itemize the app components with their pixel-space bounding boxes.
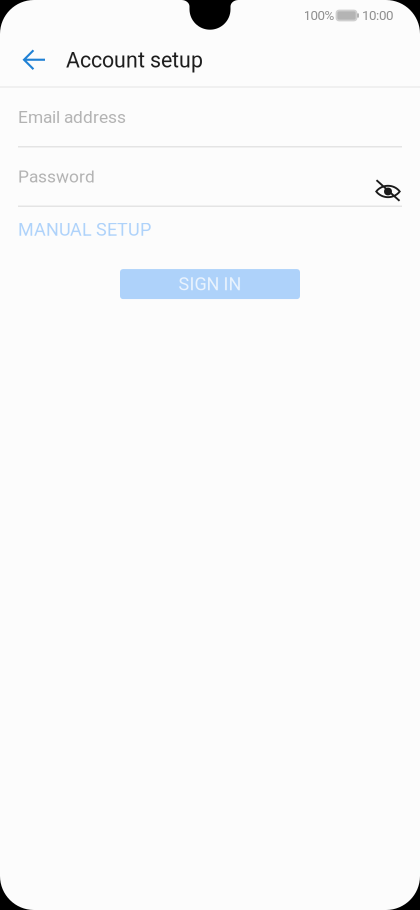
button[interactable]: SIGN IN [120, 269, 300, 299]
staticText: 100% [303, 8, 334, 23]
staticText: Email address [18, 107, 126, 127]
staticText: SIGN IN [178, 273, 241, 295]
staticText: 10:00 [362, 8, 393, 23]
staticText: Password [18, 166, 95, 187]
staticText: Account setup [66, 48, 203, 73]
button[interactable]: MANUAL SETUP [18, 213, 151, 246]
button[interactable]: Show password [376, 179, 402, 205]
button[interactable]: Back [12, 31, 57, 86]
staticText: MANUAL SETUP [18, 219, 151, 240]
